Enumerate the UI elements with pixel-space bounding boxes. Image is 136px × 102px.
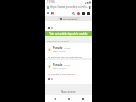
button[interactable]: Nous suivre <box>61 90 76 94</box>
button[interactable]: Account <box>77 12 80 15</box>
staticText: Se connecter <box>63 17 78 20</box>
button[interactable]: Home <box>64 95 73 102</box>
staticText: Le Message a ete supprime <box>48 73 75 76</box>
staticText: Pseudo <box>53 63 63 67</box>
staticText: Pseudo <box>53 46 63 50</box>
button[interactable]: Voir cet article depuis le mobile <box>45 31 92 36</box>
button[interactable]: Back <box>50 95 59 102</box>
staticText: messages de ce sujet <box>47 40 69 43</box>
staticText: 17:06 <box>47 0 55 4</box>
button[interactable]: jeuxvideo.com home <box>51 12 54 15</box>
staticText: Hier a 17:04:18 <box>53 67 67 70</box>
staticText: 17 juin <box>64 64 71 67</box>
button[interactable]: Pseudo <box>45 43 92 58</box>
button[interactable]: Pseudo <box>45 60 92 77</box>
staticText: 17 juin <box>64 47 71 50</box>
staticText: Hier a 17:02:41 <box>53 50 67 53</box>
button[interactable]: Menu <box>47 12 49 14</box>
staticText: https://www.jeuxvideo.com/fo… <box>50 5 89 9</box>
staticText: Voir cet article depuis le mobile <box>49 32 88 36</box>
button[interactable]: Search <box>72 12 75 15</box>
button[interactable]: Se connecter <box>58 17 80 20</box>
button[interactable]: Reload <box>89 6 90 9</box>
button[interactable]: Notifications <box>82 12 85 15</box>
staticText: Tu peux aller voir sur notre portail : r… <box>48 56 89 58</box>
button[interactable]: Menu <box>87 12 90 15</box>
button[interactable]: Recent apps <box>78 95 87 102</box>
